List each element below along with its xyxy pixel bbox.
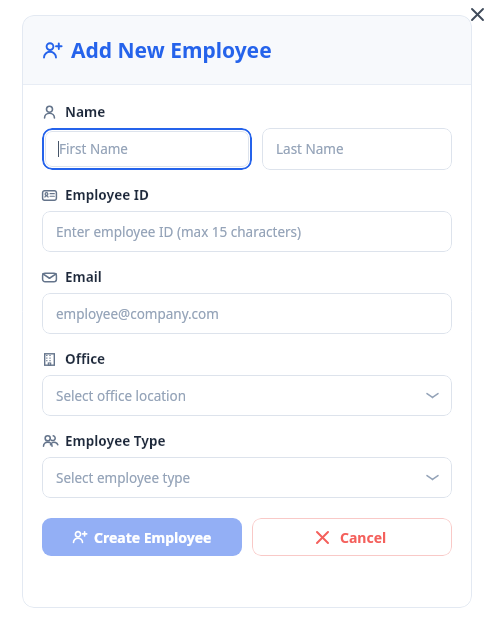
staticText: Add New Employee bbox=[71, 36, 272, 65]
button[interactable]: First Name bbox=[45, 131, 249, 167]
staticText: Office bbox=[65, 350, 106, 368]
staticText: First Name bbox=[59, 140, 128, 158]
button[interactable]: Close bbox=[466, 3, 488, 25]
staticText: Employee Type bbox=[65, 432, 166, 450]
button[interactable]: Select employee type bbox=[42, 457, 452, 498]
staticText: Employee ID bbox=[65, 186, 149, 204]
button[interactable]: Cancel bbox=[252, 518, 452, 556]
button[interactable]: Select office location bbox=[42, 375, 452, 416]
button[interactable]: employee@company.com bbox=[42, 293, 452, 334]
button[interactable]: Enter employee ID (max 15 characters) bbox=[42, 211, 452, 252]
staticText: Create Employee bbox=[94, 528, 212, 547]
staticText: Name bbox=[65, 103, 106, 121]
button[interactable]: Last Name bbox=[262, 128, 452, 170]
staticText: Select employee type bbox=[56, 469, 191, 487]
staticText: Last Name bbox=[276, 140, 344, 158]
staticText: Enter employee ID (max 15 characters) bbox=[56, 223, 302, 241]
staticText: Select office location bbox=[56, 387, 187, 405]
button[interactable]: Create Employee bbox=[42, 518, 242, 556]
staticText: Cancel bbox=[340, 528, 387, 547]
staticText: employee@company.com bbox=[56, 305, 219, 323]
staticText: Email bbox=[65, 268, 102, 286]
